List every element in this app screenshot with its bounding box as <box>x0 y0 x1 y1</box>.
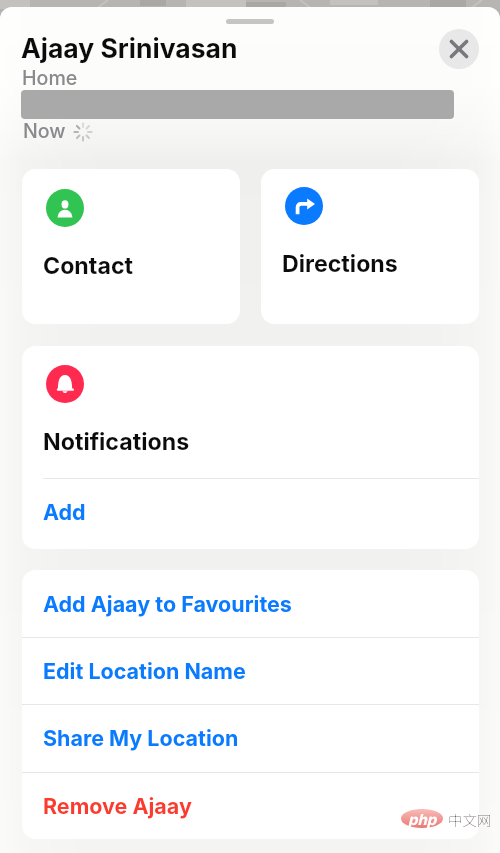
staticText: Contact <box>43 252 134 280</box>
staticText: Edit Location Name <box>43 658 246 684</box>
staticText: 中文网 <box>448 809 492 830</box>
button[interactable]: Add Ajaay to Favourites <box>22 570 479 637</box>
staticText: Remove Ajaay <box>43 793 192 819</box>
staticText: php <box>408 810 437 828</box>
button[interactable]: Contact <box>22 169 240 324</box>
button[interactable]: Edit Location Name <box>22 637 479 704</box>
button[interactable]: Directions <box>261 169 479 324</box>
staticText: Ajaay Srinivasan <box>21 32 238 64</box>
staticText: Add <box>43 499 86 525</box>
staticText: Directions <box>282 250 398 278</box>
button[interactable]: Share My Location <box>22 704 479 771</box>
staticText: Now <box>23 119 66 143</box>
button[interactable]: Remove Ajaay <box>22 772 479 839</box>
staticText: Add Ajaay to Favourites <box>43 591 292 617</box>
staticText: Share My Location <box>43 725 239 751</box>
staticText: Notifications <box>43 428 190 456</box>
staticText: Home <box>22 66 78 90</box>
button[interactable]: Close <box>439 29 479 69</box>
button[interactable]: Add <box>22 479 479 549</box>
